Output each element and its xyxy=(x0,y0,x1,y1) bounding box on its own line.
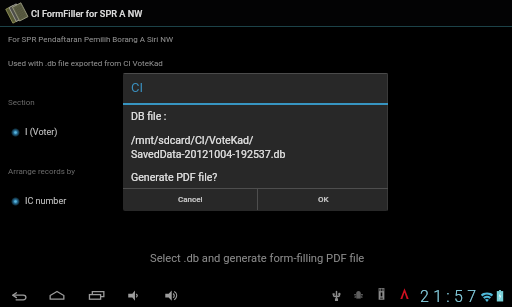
staticText: Generate PDF file? xyxy=(131,171,218,183)
staticText: I (Voter) xyxy=(25,127,58,138)
other: Battery charging xyxy=(496,289,504,302)
staticText: Select .db and generate form-filling PDF… xyxy=(150,252,365,265)
button[interactable]: Back xyxy=(2,285,37,307)
staticText: 21:57 xyxy=(420,287,481,306)
staticText: /mnt/sdcard/CI/VoteKad/ xyxy=(131,134,254,146)
staticText: CI xyxy=(131,80,143,95)
other: Wi-Fi xyxy=(481,290,493,302)
button[interactable]: Recent apps xyxy=(79,284,115,306)
staticText: CI FormFiller for SPR A NW xyxy=(31,8,143,19)
staticText: Used with .db file exported from CI Vote… xyxy=(8,59,163,68)
staticText: DB file : xyxy=(131,110,167,122)
staticText: OK xyxy=(318,195,329,204)
button[interactable]: Volume up xyxy=(156,284,188,307)
staticText: For SPR Pendaftaran Pemilih Borang A Sir… xyxy=(8,35,174,44)
staticText: Cancel xyxy=(178,195,203,204)
other: USB connected xyxy=(332,290,341,301)
button[interactable]: Home xyxy=(39,284,75,306)
button[interactable]: I (Voter) xyxy=(8,125,58,140)
staticText: Section xyxy=(8,98,35,107)
other: Notification xyxy=(399,287,410,300)
button[interactable]: IC number xyxy=(8,194,67,209)
button[interactable]: OK xyxy=(258,189,388,210)
other: Storage card xyxy=(377,287,386,300)
button[interactable]: Cancel xyxy=(123,189,257,210)
staticText: SavedData-20121004-192537.db xyxy=(131,148,286,160)
staticText: Arrange records by xyxy=(8,167,76,176)
other: USB debugging xyxy=(353,289,364,301)
button[interactable]: Volume down xyxy=(119,284,149,307)
staticText: IC number xyxy=(25,196,67,207)
